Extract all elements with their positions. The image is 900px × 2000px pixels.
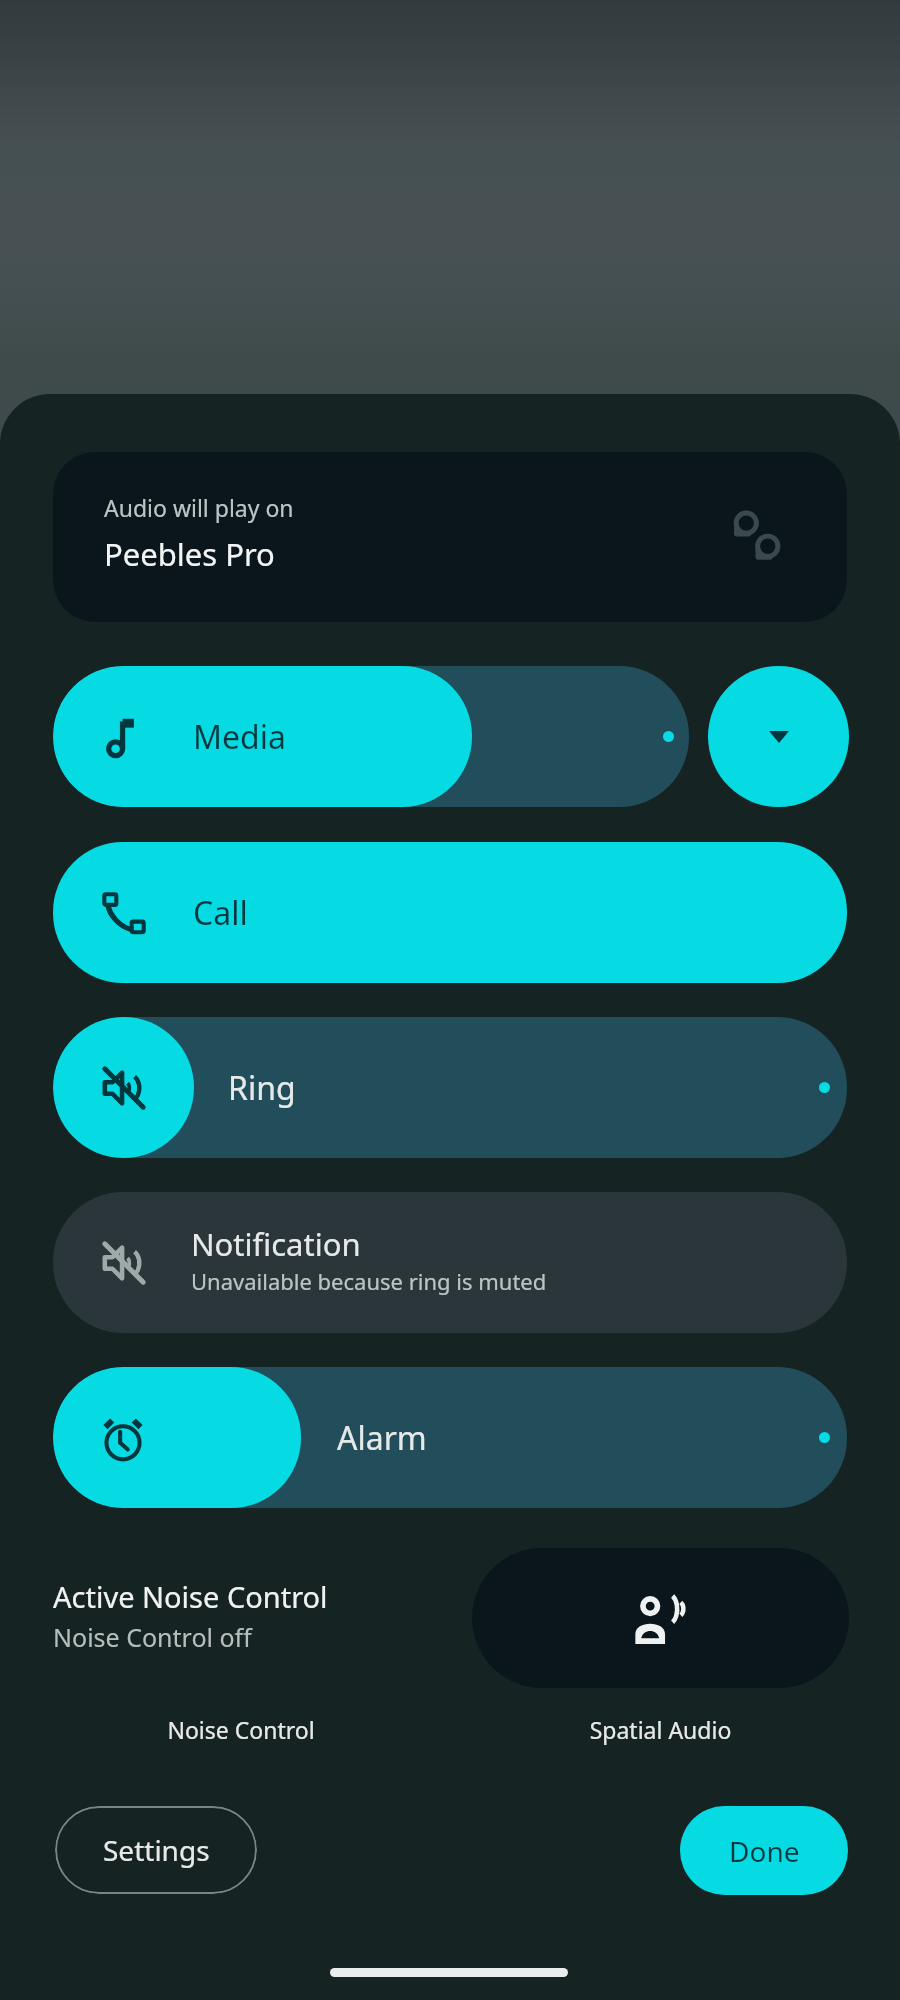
button[interactable]: Notification xyxy=(53,1192,847,1333)
staticText: Call xyxy=(193,891,248,935)
staticText: Media xyxy=(193,715,286,759)
staticText: Notification xyxy=(191,1223,361,1265)
button[interactable]: Spatial Audio xyxy=(472,1548,849,1688)
staticText: Unavailable because ring is muted xyxy=(191,1266,547,1296)
staticText: Ring xyxy=(228,1066,296,1110)
staticText: Done xyxy=(729,1832,800,1870)
staticText: Active Noise Control xyxy=(53,1577,328,1616)
staticText: Alarm xyxy=(337,1416,427,1460)
button[interactable]: Audio will play on xyxy=(53,452,847,622)
button[interactable]: Ring xyxy=(53,1017,847,1158)
staticText: Audio will play on xyxy=(104,492,294,523)
staticText: Spatial Audio xyxy=(472,1714,849,1745)
button[interactable]: Media xyxy=(53,666,689,807)
staticText: Noise Control off xyxy=(53,1620,252,1654)
staticText: Peebles Pro xyxy=(104,533,275,575)
button[interactable]: Active Noise Control xyxy=(53,1577,443,1654)
button[interactable]: Expand output switcher xyxy=(708,666,849,807)
other: Earbuds xyxy=(728,508,786,566)
button[interactable]: Alarm xyxy=(53,1367,847,1508)
button[interactable]: Done xyxy=(680,1806,848,1895)
button[interactable]: Settings xyxy=(55,1806,257,1894)
staticText: Noise Control xyxy=(53,1714,429,1745)
button[interactable]: Call xyxy=(53,842,847,983)
staticText: Settings xyxy=(103,1831,210,1869)
